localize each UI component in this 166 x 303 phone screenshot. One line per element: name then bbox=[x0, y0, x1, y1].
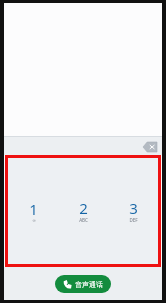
staticText: 音声通话 bbox=[75, 280, 103, 289]
button[interactable]: 2 bbox=[58, 158, 108, 264]
staticText: ABC bbox=[79, 217, 88, 223]
staticText: 1 bbox=[29, 199, 38, 219]
staticText: 3 bbox=[129, 198, 138, 218]
staticText: ∞ bbox=[32, 218, 36, 223]
staticText: 2 bbox=[79, 198, 88, 218]
button[interactable]: 3 bbox=[108, 158, 158, 264]
button[interactable]: Backspace bbox=[142, 140, 158, 153]
staticText: DEF bbox=[129, 217, 138, 223]
button[interactable]: 1 bbox=[8, 158, 58, 264]
button[interactable]: 音声通话 bbox=[55, 275, 111, 293]
